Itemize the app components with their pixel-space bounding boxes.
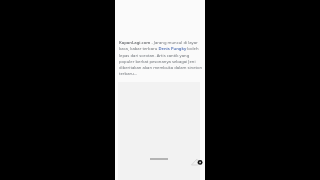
staticText: diberitakan akan membuka dalam sineton [119,65,203,71]
staticText: kaca, kabar terbaru Denis Pungky boleh [119,46,199,52]
staticText: lepas dari sorotan. Artis cantik yang [119,53,190,59]
button[interactable]: Ad options [190,153,206,169]
staticText: KapanLagi.com - Jarang muncul di layar [119,40,198,46]
staticText: terbaru... [119,71,138,77]
staticText: populer berkat pesonanya sebagai Jeni [119,59,196,65]
